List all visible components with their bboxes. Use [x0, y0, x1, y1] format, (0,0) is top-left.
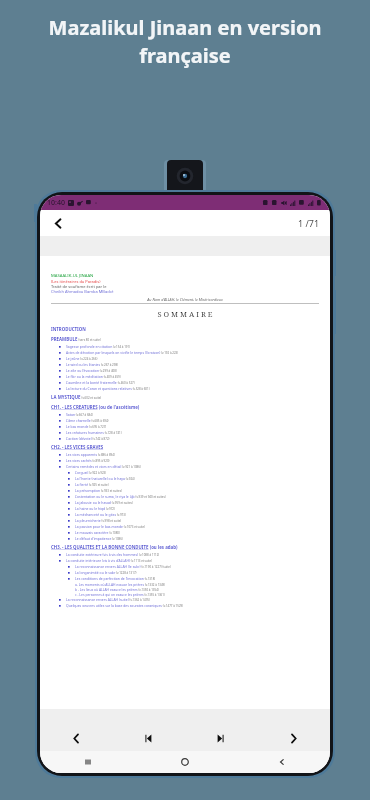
staticText: Les vices cachés (v.895 à 920) [66, 458, 110, 463]
button[interactable]: Previous page [40, 709, 112, 751]
staticText: La pleurnicherie (v.998 et suite) [75, 518, 122, 523]
staticText: 1 /71 [298, 217, 320, 229]
staticText: INTRODUCTION [51, 326, 319, 332]
staticText: PREAMBULE (vers 80 et suite) [51, 336, 319, 342]
button[interactable]: Recents [40, 751, 136, 773]
staticText: LA MYSTIQUE (v.602 et suite) [51, 394, 319, 400]
button[interactable]: Last page [184, 709, 257, 751]
button[interactable]: Back [48, 213, 68, 233]
staticText: Le fikr ou la méditation (v.409 à 459) [66, 374, 121, 379]
staticText: CH2. - LES VICES GRAVES [51, 444, 319, 450]
staticText: S O M M A I R E [51, 309, 319, 319]
staticText: La lecture du Coran et questions relativ… [66, 386, 150, 391]
staticText: a- Les moments où ALLAH exauce les prièr… [75, 582, 166, 586]
staticText: La présomption (v.933 et suites) [75, 488, 122, 493]
staticText: b - Les lieux où ALLAH exauce les prière… [75, 587, 159, 591]
button[interactable]: Home [136, 751, 233, 773]
staticText: Le défaut d'impatience (v.1086) [75, 536, 123, 541]
staticText: L'orgueil (v.922 à 923) [75, 470, 107, 475]
staticText: Sagesse profonde en citation (v.154 à 19… [66, 344, 131, 349]
staticText: La méchanceté ou le gitss (v.973) [75, 512, 126, 517]
staticText: Satan (v.667 à 684) [66, 412, 93, 417]
staticText: Les créatures humaines (v.728 à 741) [66, 430, 122, 435]
staticText: Traité de soufisme écrit par le [51, 284, 319, 289]
staticText: Mazalikul Jinaan en version française [14, 14, 356, 69]
staticText: La jalousie ou le hasad (v.959 et suites… [75, 500, 133, 505]
staticText: Le bas monde (v.695 à 727) [66, 424, 107, 429]
staticText: L'action (dévote) (v.742 à 872) [66, 436, 110, 441]
staticText: La longanimité ou le sabr (v.1228 à 1317… [75, 570, 137, 575]
staticText: Les conditions de perfection de l'invoca… [75, 576, 156, 581]
staticText: 10:40 [47, 198, 65, 208]
staticText: Le mauvais caractère (v.1080) [75, 530, 120, 535]
staticText: Au Nom d'ALLAH, le Clément, le Miséricor… [51, 297, 319, 302]
staticText: La passion pour le bas-monde (v.1073 et … [75, 524, 146, 529]
staticText: La reconnaissance envers ALLAH (suite) (… [66, 597, 150, 602]
button[interactable]: Back [233, 751, 330, 773]
staticText: Les vices apparents (v.886 à 894) [66, 452, 115, 457]
staticText: La conduite intérieure (vis à vis d'ALLA… [66, 558, 153, 563]
staticText: La fierté (v.925 et suite) [75, 482, 109, 487]
staticText: Certains remèdes et vices en détail (v.9… [66, 464, 141, 469]
staticText: L'âme charnelle (v.685 à 694) [66, 418, 109, 423]
staticText: La conduite extérieure (vis à vis des ho… [66, 552, 160, 557]
staticText: Actes de dévotion par lesquels on vivifi… [66, 350, 179, 355]
staticText: CH1. - LES CREATURES (ou de l'ascétisme) [51, 404, 319, 410]
button[interactable]: 1 /71 [296, 217, 322, 229]
staticText: Quelques oeuvres utiles sur la base des … [66, 603, 184, 608]
staticText: CH3. - LES QUALITES ET LA BONNE CONDUITE… [51, 544, 319, 550]
staticText: L'aumône et la bonté fraternelle (v.460 … [66, 380, 135, 385]
button[interactable]: Next page [257, 709, 330, 751]
button[interactable]: First page [112, 709, 184, 751]
staticText: MASAALIK-UL JINAAN [51, 273, 319, 279]
staticText: Le zikr ou l'évocation (v.299 à 408) [66, 368, 117, 373]
staticText: La haine ou le hiqd (v.972) [75, 506, 115, 511]
staticText: Le jeûne (v.224 à 266) [66, 356, 98, 361]
staticText: c - Les personnes à qui on exauce les pr… [75, 592, 165, 596]
staticText: La l'honte (naturelle) ou le haya (v.924… [75, 476, 135, 481]
staticText: Le wird ou les litanies (v.267 à 298) [66, 362, 118, 367]
staticText: Cheikh Ahmadou Bamba MBacké [51, 289, 319, 294]
staticText: L'ostentation ou le suma, le riya le ûjb… [75, 494, 166, 499]
staticText: La reconnaissance envers ALLAH (le sukr)… [75, 564, 171, 569]
staticText: (Les itinéraires du Paradis) [51, 279, 319, 284]
